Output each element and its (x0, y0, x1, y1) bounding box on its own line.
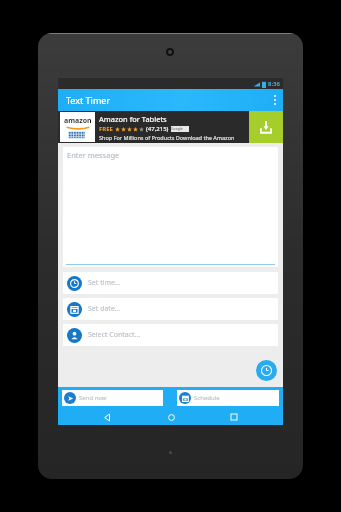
staticText: Select Contact... (88, 330, 141, 340)
button[interactable]: Set time... (63, 272, 278, 294)
button[interactable]: Schedule (177, 390, 279, 406)
staticText: amazon (64, 116, 92, 126)
button[interactable]: More options (267, 89, 283, 111)
button[interactable]: Recent apps (219, 409, 249, 425)
staticText: Schedule (194, 394, 220, 402)
staticText: Send now (79, 394, 107, 402)
staticText: 8:36 (268, 80, 280, 88)
button[interactable]: Download (249, 111, 283, 143)
staticText: Shop For Millions of Products Download t… (99, 134, 246, 141)
button[interactable]: Back (92, 409, 122, 425)
staticText: FREE (99, 125, 113, 133)
staticText: Set date... (88, 304, 121, 314)
button[interactable]: Send now (62, 390, 163, 406)
staticText: Google play (171, 126, 189, 132)
staticText: Enter message (67, 150, 120, 160)
button[interactable]: Set date... (63, 298, 278, 320)
button[interactable]: History (256, 360, 277, 381)
button[interactable]: Home (156, 409, 186, 425)
button[interactable]: amazon (58, 111, 283, 143)
button[interactable]: Enter message (63, 147, 278, 267)
staticText: Text Timer (66, 94, 111, 106)
staticText: Set time... (88, 278, 121, 288)
button[interactable]: Select Contact... (63, 324, 278, 346)
staticText: Amazon for Tablets (99, 114, 167, 124)
staticText: (47,215) (146, 125, 169, 133)
